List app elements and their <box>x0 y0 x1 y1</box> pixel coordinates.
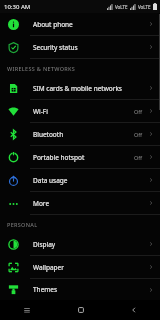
button[interactable]: Data usage <box>0 169 160 191</box>
staticText: VoLTE <box>138 4 151 10</box>
button[interactable]: Back <box>107 300 160 320</box>
staticText: Display <box>33 240 148 249</box>
staticText: Off <box>134 108 143 115</box>
staticText: Off <box>134 154 143 161</box>
button[interactable]: Home <box>54 300 107 320</box>
staticText: Off <box>134 131 143 138</box>
button[interactable]: Wallpaper <box>0 256 160 278</box>
button[interactable]: Portable hotspot <box>0 146 160 168</box>
button[interactable]: About phone <box>0 13 160 35</box>
staticText: Data usage <box>33 176 148 185</box>
button[interactable]: Bluetooth <box>0 123 160 145</box>
button[interactable]: Wi-Fi <box>0 100 160 122</box>
button[interactable]: Themes <box>0 279 160 300</box>
staticText: SIM cards & mobile networks <box>33 84 148 93</box>
staticText: More <box>33 199 148 208</box>
staticText: VoLTE <box>115 4 128 10</box>
staticText: Wallpaper <box>33 263 148 272</box>
staticText: About phone <box>33 20 148 29</box>
staticText: PERSONAL <box>7 221 38 228</box>
staticText: Bluetooth <box>33 130 134 139</box>
staticText: Portable hotspot <box>33 153 134 162</box>
button[interactable]: Recents <box>0 300 54 320</box>
staticText: Security status <box>33 43 148 52</box>
staticText: 10:30 AM <box>4 3 31 11</box>
button[interactable]: More <box>0 192 160 214</box>
button[interactable]: Display <box>0 233 160 255</box>
staticText: Wi-Fi <box>33 107 134 116</box>
staticText: Themes <box>33 285 148 294</box>
staticText: WIRELESS & NETWORKS <box>7 65 76 72</box>
button[interactable]: SIM cards & mobile networks <box>0 77 160 99</box>
button[interactable]: Security status <box>0 36 160 58</box>
